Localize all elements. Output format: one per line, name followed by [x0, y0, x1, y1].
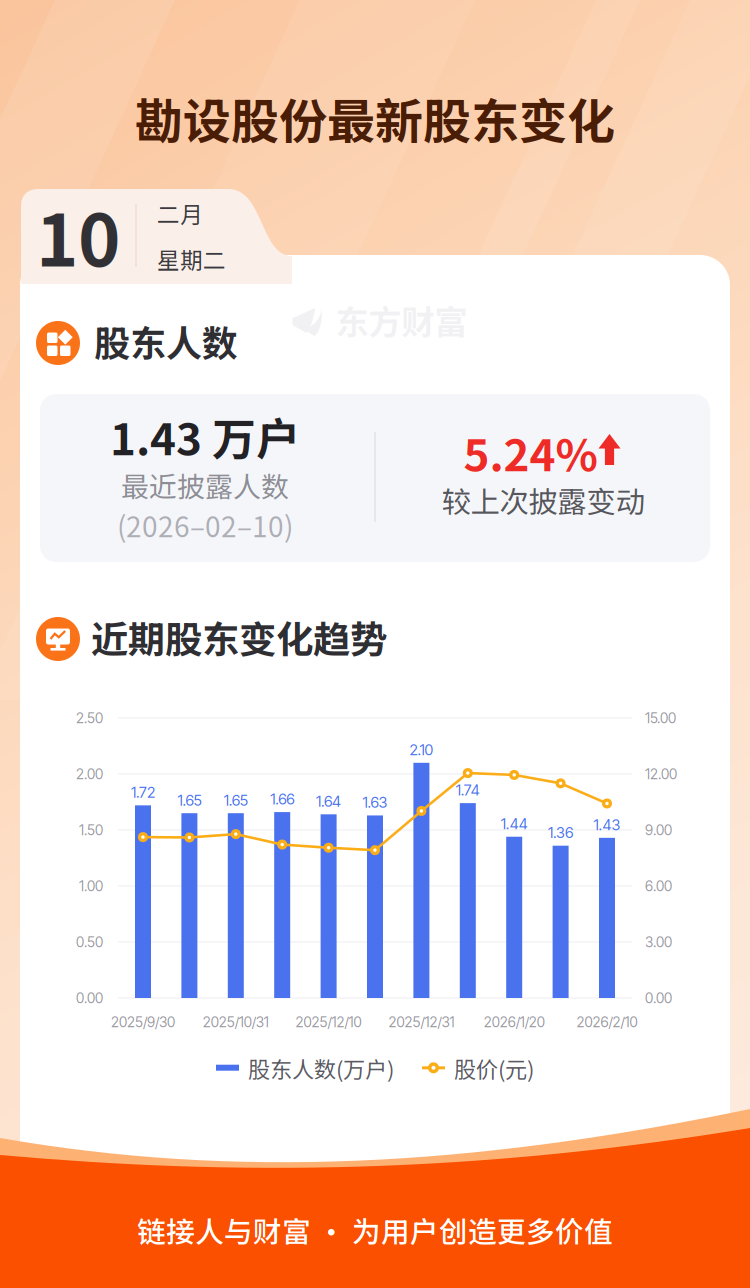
staticText: 较上次披露变动 [441, 479, 644, 521]
staticText: 1.65 [224, 791, 248, 809]
staticText: 1.36 [548, 824, 573, 842]
staticText: 链接人与财富 · 为用户创造更多价值 [137, 1209, 613, 1251]
staticText: 股东人数(万户) [248, 1052, 394, 1084]
staticText: 1.00 [79, 877, 103, 894]
staticText: 二月 [157, 197, 203, 229]
staticText: 10 [36, 183, 120, 287]
staticText: 2025/10/31 [203, 1013, 269, 1030]
staticText: 2026/2/10 [576, 1013, 637, 1030]
staticText: 2025/12/10 [296, 1013, 362, 1030]
staticText: 2.50 [76, 709, 103, 726]
staticText: 1.74 [456, 781, 480, 799]
staticText: 股价(元) [454, 1052, 534, 1084]
staticText: 5.24% [463, 420, 597, 484]
staticText: 0.00 [645, 989, 672, 1006]
staticText: 1.63 [362, 793, 387, 811]
staticText: 2.10 [409, 741, 433, 759]
staticText: 1.64 [316, 792, 341, 810]
staticText: 1.72 [131, 783, 155, 801]
staticText: 6.00 [645, 877, 672, 894]
staticText: 15.00 [645, 709, 676, 726]
staticText: (2026–02–10) [117, 505, 293, 545]
staticText: 1.66 [270, 790, 294, 808]
staticText: 2026/1/20 [484, 1013, 545, 1030]
staticText: 0.50 [76, 933, 103, 950]
staticText: 1.44 [501, 815, 528, 833]
staticText: 1.50 [79, 821, 103, 838]
staticText: 最近披露人数 [121, 465, 289, 505]
staticText: 股东人数 [94, 315, 238, 367]
staticText: 2025/9/30 [111, 1013, 175, 1030]
staticText: 3.00 [645, 933, 672, 950]
staticText: 勘设股份最新股东变化 [135, 83, 615, 153]
staticText: 星期二 [157, 242, 226, 275]
staticText: 2.00 [76, 765, 103, 782]
staticText: 2025/12/31 [388, 1013, 454, 1030]
staticText: 12.00 [645, 765, 677, 782]
staticText: 9.00 [645, 821, 672, 838]
staticText: 东方财富 [335, 296, 467, 344]
staticText: 1.65 [177, 791, 201, 809]
staticText: 0.00 [76, 989, 103, 1006]
staticText: 1.43 万户 [110, 404, 300, 468]
staticText: 近期股东变化趋势 [91, 610, 387, 664]
staticText: 1.43 [593, 816, 620, 834]
